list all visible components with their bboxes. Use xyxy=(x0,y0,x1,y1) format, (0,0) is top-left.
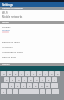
button[interactable]: Mobile networks xyxy=(0,15,64,19)
staticText: j xyxy=(42,78,43,81)
button[interactable]: i xyxy=(43,71,48,76)
staticText: k xyxy=(48,78,50,81)
staticText: o xyxy=(51,72,53,75)
staticText: Device xyxy=(2,21,9,24)
staticText: p xyxy=(57,72,59,75)
button[interactable]: w xyxy=(7,71,12,76)
button[interactable]: Date & time xyxy=(0,54,64,59)
staticText: Language & input xyxy=(2,50,23,53)
button[interactable]: f xyxy=(22,77,27,82)
button[interactable]: z xyxy=(9,83,14,88)
button[interactable]: v xyxy=(27,83,32,88)
staticText: s xyxy=(12,78,14,81)
button[interactable]: Sound xyxy=(0,28,64,31)
staticText: z xyxy=(11,84,13,87)
staticText: q xyxy=(3,72,5,75)
button[interactable]: k xyxy=(46,77,51,82)
staticText: Settings xyxy=(2,3,13,7)
button[interactable]: s xyxy=(10,77,15,82)
button[interactable]: g xyxy=(28,77,33,82)
staticText: r xyxy=(21,72,22,75)
button[interactable]: Wi-Fi xyxy=(0,11,64,15)
staticText: Backup & reset xyxy=(2,40,20,43)
staticText: n xyxy=(41,84,43,87)
staticText: Date & time xyxy=(2,55,16,58)
staticText: Mobile networks xyxy=(2,15,23,19)
button[interactable]: l xyxy=(52,77,57,82)
staticText: u xyxy=(39,72,41,75)
button[interactable]: . xyxy=(40,89,45,94)
staticText: ? xyxy=(3,90,5,93)
button[interactable]: Backup & reset xyxy=(0,39,64,44)
staticText: b xyxy=(35,84,37,87)
button[interactable]: Language & input xyxy=(0,49,64,54)
staticText: Wi-Fi xyxy=(2,11,8,15)
button[interactable]: t xyxy=(25,71,30,76)
staticText: h xyxy=(36,78,38,81)
button[interactable]: d xyxy=(16,77,21,82)
staticText: a xyxy=(6,78,8,81)
staticText: y xyxy=(33,72,35,75)
staticText: Sound xyxy=(2,28,10,31)
button[interactable]: u xyxy=(37,71,42,76)
staticText: Accounts xyxy=(2,45,13,48)
staticText: t xyxy=(27,72,28,75)
button[interactable]: h xyxy=(34,77,39,82)
button[interactable]: c xyxy=(21,83,26,88)
staticText: Wireless & networks xyxy=(2,7,23,10)
button[interactable]: o xyxy=(49,71,54,76)
staticText: l xyxy=(54,78,55,81)
button[interactable]: a xyxy=(4,77,9,82)
button[interactable]: Display xyxy=(0,25,64,28)
staticText: d xyxy=(18,78,20,81)
button[interactable]: e xyxy=(13,71,18,76)
button[interactable]: x xyxy=(15,83,20,88)
button[interactable]: r xyxy=(19,71,24,76)
button[interactable]: ? xyxy=(1,89,6,94)
button[interactable]: Accounts xyxy=(0,44,64,49)
button[interactable]: p xyxy=(55,71,60,76)
button[interactable]: q xyxy=(1,71,6,76)
button[interactable]: j xyxy=(40,77,45,82)
staticText: g xyxy=(30,78,32,81)
staticText: Display xyxy=(2,25,11,28)
staticText: System xyxy=(2,63,10,66)
staticText: e xyxy=(15,72,17,75)
button[interactable]: b xyxy=(33,83,38,88)
staticText: v xyxy=(29,84,31,87)
staticText: c xyxy=(23,84,25,87)
button[interactable]: m xyxy=(45,83,50,88)
button[interactable]: y xyxy=(31,71,36,76)
staticText: x xyxy=(17,84,19,87)
staticText: i xyxy=(45,72,46,75)
button[interactable]: n xyxy=(39,83,44,88)
staticText: w xyxy=(9,72,11,75)
staticText: m xyxy=(46,84,49,87)
staticText: f xyxy=(24,78,25,81)
